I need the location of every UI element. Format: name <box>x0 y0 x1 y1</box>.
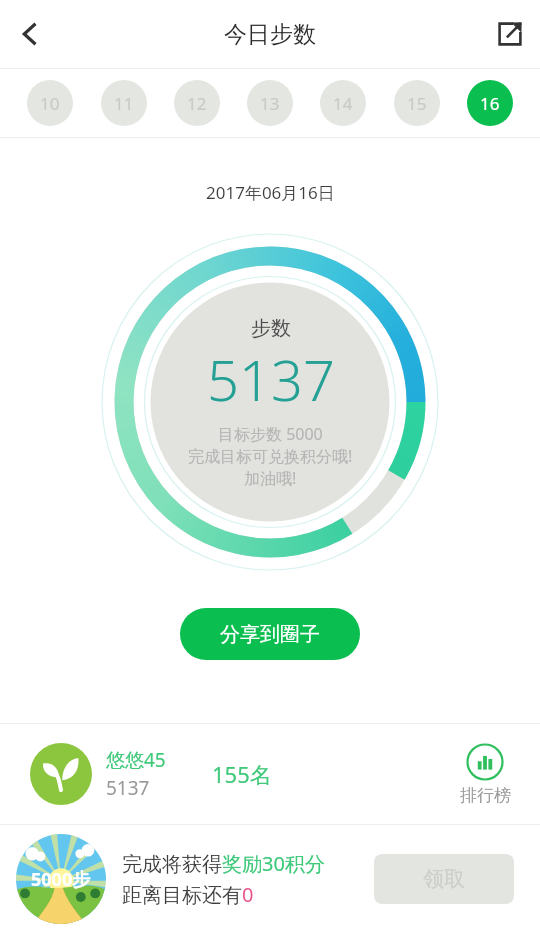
button[interactable]: 10 <box>27 80 73 126</box>
staticText: 排行榜 <box>460 785 511 806</box>
button[interactable]: Share <box>480 4 540 64</box>
staticText: 12 <box>187 92 207 115</box>
button[interactable]: 13 <box>247 80 293 126</box>
button[interactable]: 悠悠45 <box>0 724 430 824</box>
button[interactable]: 分享到圈子 <box>180 608 360 660</box>
staticText: 15 <box>407 92 427 115</box>
staticText: 5137 <box>106 775 150 801</box>
staticText: 目标步数 5000 <box>218 423 323 445</box>
button[interactable]: Back <box>0 4 60 64</box>
button[interactable]: 12 <box>174 80 220 126</box>
staticText: 155名 <box>212 759 272 789</box>
button[interactable]: 14 <box>320 80 366 126</box>
staticText: 16 <box>480 92 500 115</box>
staticText: 11 <box>114 92 134 115</box>
staticText: 完成目标可兑换积分哦! <box>188 445 353 467</box>
button[interactable]: 11 <box>101 80 147 126</box>
staticText: 分享到圈子 <box>220 622 320 647</box>
staticText: 14 <box>333 92 353 115</box>
staticText: 2017年06月16日 <box>206 181 335 204</box>
button[interactable]: 领取 <box>374 854 514 904</box>
staticText: 加油哦! <box>244 467 297 489</box>
button[interactable]: 排行榜 <box>430 724 540 824</box>
button[interactable]: 15 <box>394 80 440 126</box>
staticText: 10 <box>40 92 60 115</box>
staticText: 领取 <box>423 866 465 892</box>
staticText: 悠悠45 <box>106 747 166 773</box>
staticText: 今日步数 <box>224 20 316 49</box>
staticText: 距离目标还有0 <box>122 881 254 908</box>
staticText: 5137 <box>207 341 335 417</box>
staticText: 5000步 <box>31 867 91 892</box>
staticText: 13 <box>260 92 280 115</box>
staticText: 完成将获得奖励30积分 <box>122 850 325 877</box>
staticText: 步数 <box>251 316 291 341</box>
button[interactable]: 16 <box>467 80 513 126</box>
